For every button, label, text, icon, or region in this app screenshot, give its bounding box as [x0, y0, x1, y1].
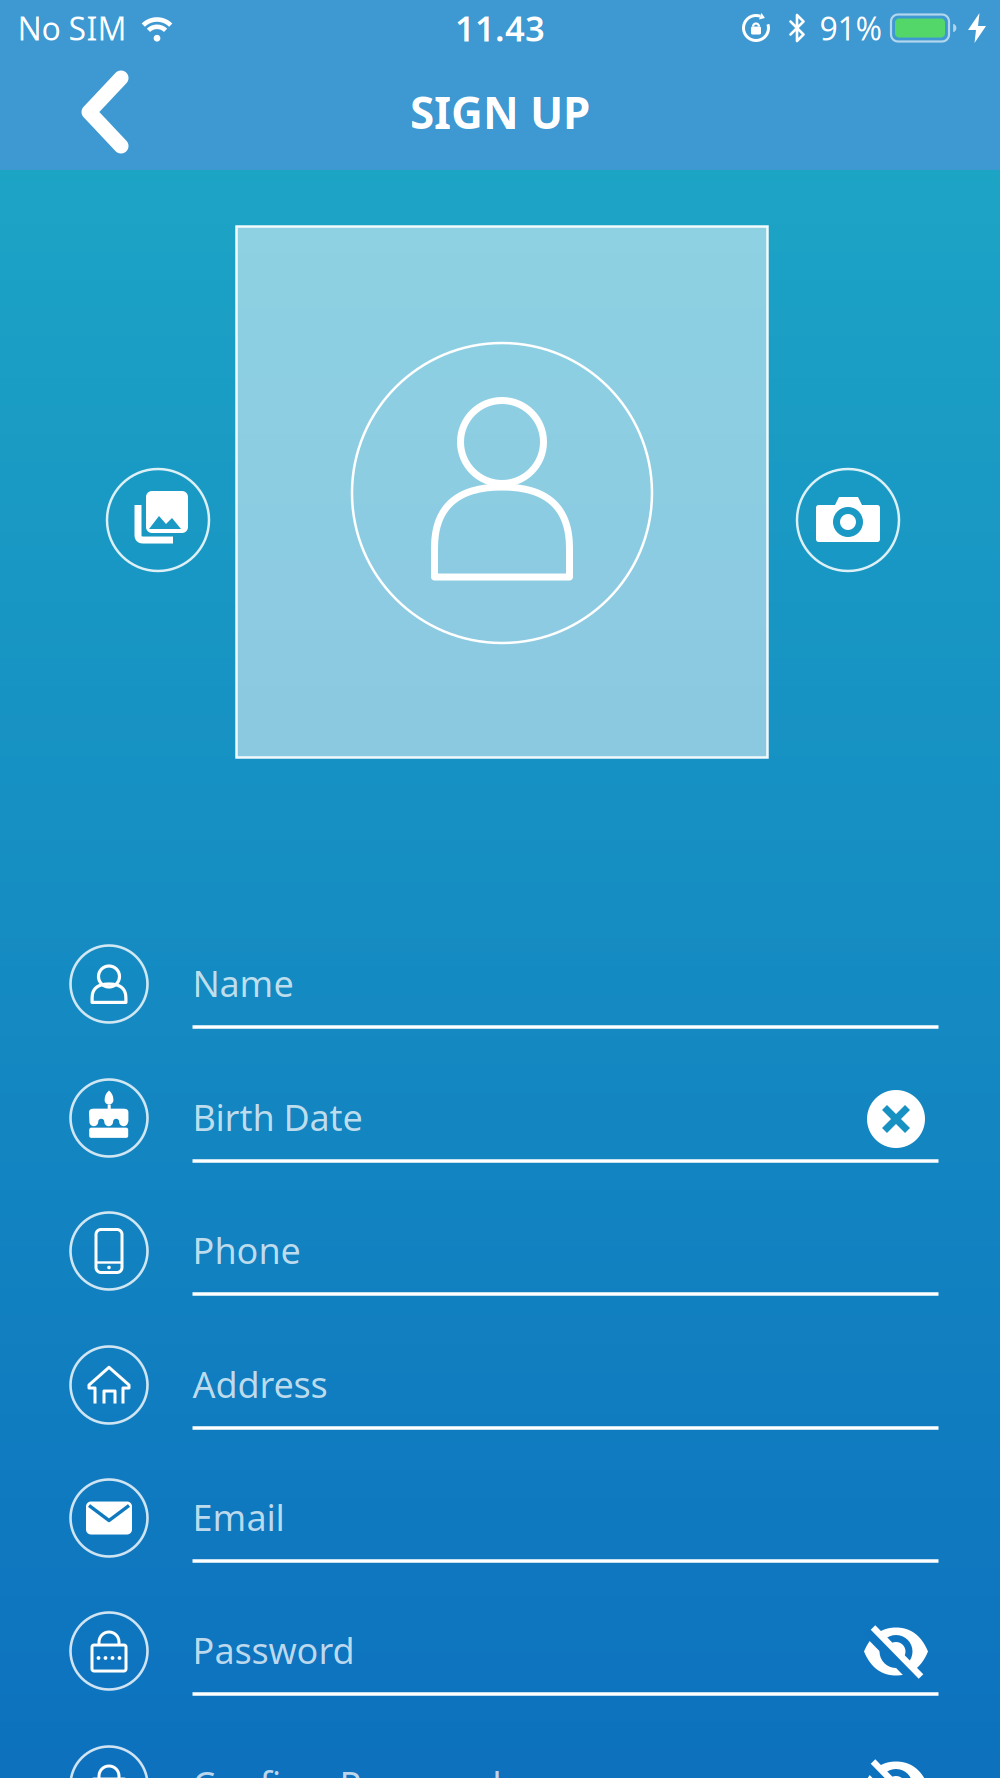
button[interactable]: Back	[76, 67, 136, 157]
staticText: 11.43	[455, 5, 545, 51]
staticText: Birth Date	[192, 1093, 362, 1141]
button[interactable]: Phone	[61, 1207, 939, 1297]
staticText: SIGN UP	[410, 83, 590, 141]
staticText: Email	[192, 1493, 284, 1541]
button[interactable]: Birth Date	[61, 1074, 939, 1164]
button[interactable]: Confirm Password	[61, 1741, 939, 1778]
button[interactable]: Choose photo from library	[107, 469, 209, 571]
staticText: Confirm Password	[192, 1760, 501, 1778]
staticText: Phone	[192, 1226, 300, 1274]
button[interactable]: Address	[61, 1341, 939, 1431]
staticText: 91%	[819, 7, 882, 49]
staticText: Address	[192, 1360, 327, 1408]
staticText: Password	[192, 1626, 354, 1674]
staticText: No SIM	[17, 7, 126, 49]
button[interactable]: Show confirm password	[864, 1760, 928, 1778]
button[interactable]: Name	[61, 940, 939, 1030]
button[interactable]: Take photo	[797, 469, 899, 571]
button[interactable]: Clear birth date	[867, 1090, 925, 1148]
button[interactable]: Show password	[864, 1626, 928, 1679]
button[interactable]: Email	[61, 1474, 939, 1564]
staticText: Name	[192, 959, 293, 1007]
button[interactable]: Password	[61, 1607, 939, 1697]
